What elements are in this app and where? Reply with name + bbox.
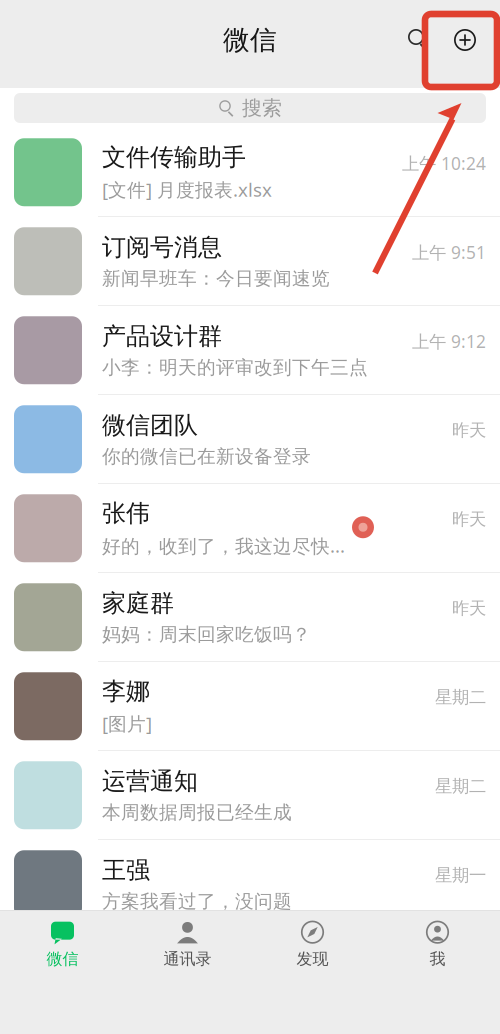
staticText: 方案我看过了，没问题: [102, 890, 292, 913]
staticText: 微信: [46, 949, 78, 969]
staticText: 发现: [296, 949, 328, 969]
button[interactable]: 运营通知: [0, 751, 500, 840]
button[interactable]: 文件传输助手: [0, 128, 500, 217]
staticText: 星期一: [435, 865, 486, 886]
button[interactable]: 搜索: [404, 18, 434, 62]
staticText: 文件传输助手: [102, 143, 246, 172]
staticText: 昨天: [452, 598, 486, 619]
staticText: [文件] 月度报表.xlsx: [102, 177, 272, 202]
button[interactable]: 微信团队: [0, 395, 500, 484]
staticText: 你的微信已在新设备登录: [102, 445, 311, 468]
staticText: 产品设计群: [102, 321, 222, 351]
staticText: 好的，收到了，我这边尽快处理: [102, 533, 346, 558]
staticText: 本周数据周报已经生成: [102, 801, 292, 824]
staticText: 李娜: [102, 677, 150, 706]
button[interactable]: 通讯录: [125, 910, 250, 968]
staticText: 昨天: [452, 420, 486, 441]
button[interactable]: 搜索: [0, 88, 500, 128]
staticText: 上午 9:12: [412, 330, 486, 353]
staticText: 家庭群: [102, 588, 174, 618]
staticText: 我: [429, 949, 445, 969]
staticText: 通讯录: [163, 949, 211, 969]
staticText: 王强: [102, 855, 150, 885]
staticText: 微信: [223, 24, 277, 56]
button[interactable]: 李娜: [0, 662, 500, 751]
button[interactable]: 王强: [0, 840, 500, 929]
button[interactable]: 家庭群: [0, 573, 500, 662]
button[interactable]: 产品设计群: [0, 306, 500, 395]
staticText: 妈妈：周末回家吃饭吗？: [102, 623, 311, 646]
staticText: 星期二: [435, 687, 486, 708]
button[interactable]: 发现: [250, 910, 375, 968]
button[interactable]: 张伟: [0, 484, 500, 573]
staticText: 微信团队: [102, 410, 198, 440]
staticText: 上午 9:51: [412, 241, 486, 264]
button[interactable]: 我: [375, 910, 500, 968]
staticText: 订阅号消息: [102, 232, 222, 262]
button[interactable]: 添加: [445, 18, 485, 62]
staticText: 星期二: [435, 776, 486, 797]
staticText: 昨天: [452, 509, 486, 530]
staticText: 小李：明天的评审改到下午三点: [102, 356, 368, 379]
staticText: 张伟: [102, 499, 150, 528]
staticText: 新闻早班车：今日要闻速览: [102, 267, 330, 290]
staticText: 上午 10:24: [402, 152, 486, 175]
staticText: [图片]: [102, 711, 152, 736]
button[interactable]: 微信: [0, 910, 125, 968]
button[interactable]: 订阅号消息: [0, 217, 500, 306]
staticText: 运营通知: [102, 766, 198, 796]
staticText: 搜索: [242, 96, 282, 120]
